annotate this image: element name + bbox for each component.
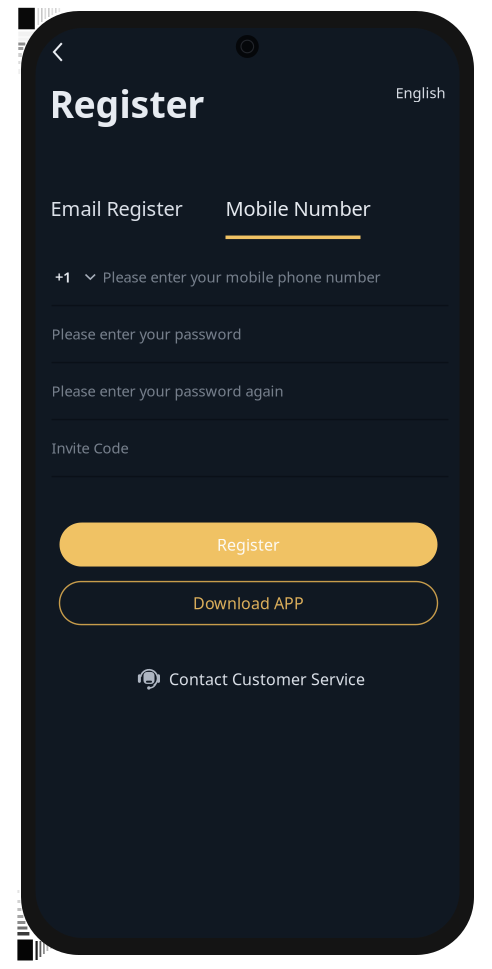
- staticText: Please enter your password: [51, 324, 241, 344]
- button[interactable]: Mobile Number: [225, 195, 370, 239]
- staticText: Contact Customer Service: [169, 668, 365, 690]
- button[interactable]: Download APP: [59, 582, 437, 625]
- staticText: Mobile Number: [225, 195, 370, 222]
- staticText: +1: [55, 267, 71, 287]
- staticText: Register: [217, 534, 280, 555]
- button[interactable]: Contact Customer Service: [138, 668, 365, 691]
- staticText: Download APP: [193, 592, 304, 614]
- staticText: Register: [49, 79, 204, 128]
- button[interactable]: Back: [35, 28, 79, 76]
- staticText: Invite Code: [51, 438, 128, 458]
- staticText: English: [395, 83, 445, 102]
- button[interactable]: English: [383, 79, 459, 108]
- button[interactable]: Register: [59, 523, 437, 567]
- staticText: Email Register: [50, 195, 182, 222]
- button[interactable]: Email Register: [50, 195, 185, 239]
- staticText: Please enter your mobile phone number: [102, 267, 380, 287]
- staticText: Please enter your password again: [51, 381, 283, 401]
